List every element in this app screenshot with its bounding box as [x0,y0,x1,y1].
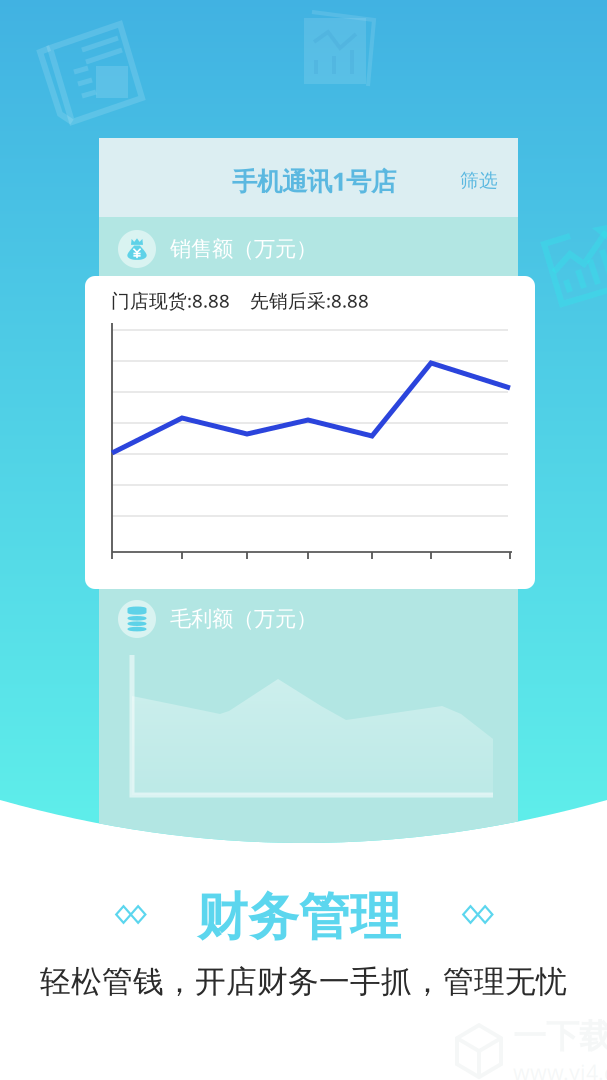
staticText: 筛选 [460,169,498,192]
staticText: 销售额（万元） [170,236,317,262]
staticText: 门店现货:8.88 先销后采:8.88 [111,288,369,313]
staticText: 财务管理 [197,886,401,948]
button[interactable]: 筛选 [450,159,508,202]
staticText: www.yi4.com [513,1058,607,1080]
staticText: 手机通讯1号店 [232,164,396,198]
staticText: 一下载 [513,1016,607,1057]
staticText: 轻松管钱，开店财务一手抓，管理无忧 [40,963,567,1001]
staticText: 毛利额（万元） [170,606,317,632]
